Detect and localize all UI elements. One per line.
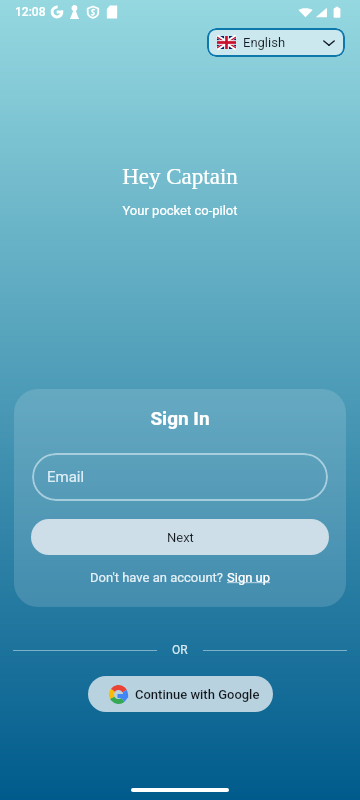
staticText: Continue with Google (135, 687, 260, 702)
button[interactable]: Continue with Google (88, 676, 273, 712)
staticText: Hey Captain (0, 164, 360, 189)
staticText: OR (172, 643, 188, 657)
button[interactable]: Next (31, 519, 329, 555)
staticText: Don't have an account? (90, 570, 227, 585)
staticText: Sign In (14, 407, 346, 429)
staticText: Email (47, 468, 85, 486)
button[interactable]: Email (32, 453, 328, 501)
staticText: Your pocket co-pilot (0, 203, 360, 218)
staticText: Next (167, 530, 194, 545)
staticText: 12:08 (15, 5, 46, 19)
staticText: English (243, 35, 286, 50)
button[interactable]: Sign up (227, 570, 271, 585)
button[interactable]: Select language, English (207, 28, 345, 57)
